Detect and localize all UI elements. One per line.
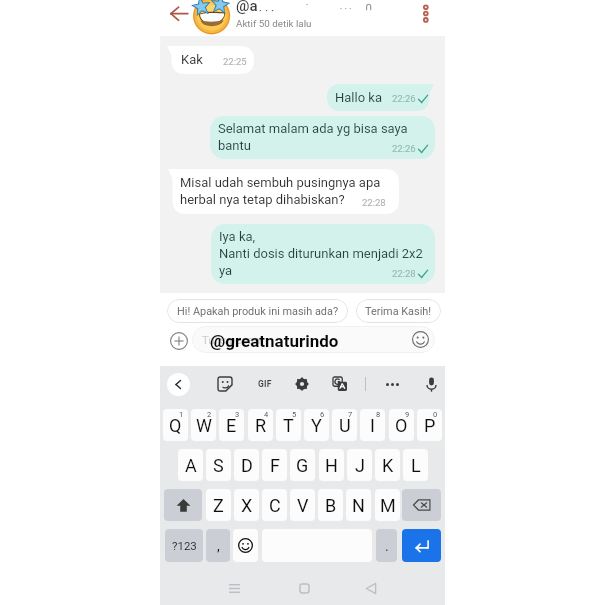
staticText: Q bbox=[169, 415, 182, 436]
button[interactable]: Y bbox=[304, 409, 329, 441]
button[interactable]: translate bbox=[330, 374, 350, 394]
button[interactable]: R bbox=[248, 409, 273, 441]
button[interactable]: G bbox=[290, 449, 315, 481]
button[interactable]: mic bbox=[421, 374, 441, 394]
button[interactable]: W bbox=[191, 409, 216, 441]
staticText: Z bbox=[213, 495, 224, 516]
staticText: 9 bbox=[405, 410, 410, 419]
staticText: R bbox=[255, 415, 267, 436]
button[interactable]: Recent apps bbox=[224, 578, 245, 599]
staticText: Kak bbox=[181, 52, 203, 67]
button[interactable]: enter bbox=[402, 529, 441, 562]
staticText: , bbox=[217, 538, 220, 554]
button[interactable]: More options bbox=[414, 0, 438, 24]
staticText: I bbox=[370, 415, 375, 436]
button[interactable]: I bbox=[360, 409, 385, 441]
button[interactable]: S bbox=[206, 449, 231, 481]
staticText: Iya ka, bbox=[219, 229, 256, 244]
staticText: @greatnaturindo bbox=[210, 331, 339, 351]
button[interactable]: Back bbox=[164, 0, 190, 26]
staticText: ?123 bbox=[172, 539, 197, 552]
button[interactable]: Selamat malam ada yg bisa saya bbox=[210, 116, 435, 159]
button[interactable]: T bbox=[276, 409, 301, 441]
button[interactable]: Iya ka, bbox=[211, 224, 435, 284]
button[interactable]: B bbox=[318, 489, 343, 521]
button[interactable]: Terima Kasih! bbox=[356, 299, 441, 323]
staticText: 7 bbox=[348, 410, 353, 419]
button[interactable]: H bbox=[319, 449, 344, 481]
staticText: ∩ bbox=[365, 0, 374, 13]
button[interactable]: Z bbox=[206, 489, 231, 521]
button[interactable]: Emoji bbox=[412, 331, 429, 348]
staticText: A bbox=[185, 455, 197, 476]
staticText: 22:28 bbox=[362, 197, 386, 208]
button[interactable]: , bbox=[206, 529, 230, 562]
staticText: · · · bbox=[340, 5, 352, 13]
button[interactable]: C bbox=[262, 489, 287, 521]
staticText: . bbox=[385, 538, 389, 554]
staticText: · bbox=[306, 1, 309, 9]
button[interactable]: dots bbox=[382, 374, 402, 394]
button[interactable]: gif bbox=[255, 374, 275, 394]
staticText: 8 bbox=[376, 410, 381, 419]
button[interactable]: J bbox=[347, 449, 372, 481]
button[interactable]: V bbox=[290, 489, 315, 521]
staticText: O bbox=[395, 415, 408, 436]
staticText: N bbox=[352, 495, 365, 516]
button[interactable]: A bbox=[178, 449, 203, 481]
staticText: 6 bbox=[320, 410, 325, 419]
button[interactable]: Hallo ka bbox=[327, 84, 434, 111]
staticText: ya bbox=[219, 263, 233, 278]
staticText: K bbox=[382, 455, 394, 476]
button[interactable]: . bbox=[376, 529, 397, 562]
staticText: M bbox=[380, 495, 396, 516]
staticText: 1 bbox=[179, 410, 184, 419]
staticText: X bbox=[241, 495, 253, 516]
staticText: V bbox=[297, 495, 309, 516]
button[interactable]: O bbox=[389, 409, 414, 441]
button[interactable]: U bbox=[332, 409, 357, 441]
button[interactable]: F bbox=[262, 449, 287, 481]
staticText: bantu bbox=[218, 138, 251, 153]
button[interactable]: backspace bbox=[402, 489, 441, 521]
button[interactable]: L bbox=[403, 449, 428, 481]
button[interactable]: Kak bbox=[167, 46, 254, 74]
staticText: Misal udah sembuh pusingnya apa bbox=[180, 175, 381, 190]
button[interactable]: sticker bbox=[215, 374, 235, 394]
button[interactable]: Home bbox=[294, 578, 315, 599]
button[interactable]: Back bbox=[360, 578, 381, 599]
staticText: T bbox=[283, 415, 294, 436]
button[interactable]: gear bbox=[292, 374, 312, 394]
staticText: G bbox=[296, 455, 309, 476]
staticText: C bbox=[269, 495, 281, 516]
button[interactable]: shift bbox=[164, 489, 202, 521]
button[interactable]: K bbox=[375, 449, 400, 481]
staticText: Aktif 50 detik lalu bbox=[236, 18, 312, 29]
button[interactable]: P bbox=[417, 409, 442, 441]
button[interactable]: X bbox=[234, 489, 259, 521]
staticText: D bbox=[241, 455, 253, 476]
button[interactable]: ?123 bbox=[165, 529, 203, 562]
button[interactable]: Q bbox=[163, 409, 188, 441]
staticText: Y bbox=[311, 415, 322, 436]
staticText: 3 bbox=[235, 410, 240, 419]
button[interactable]: Emoji bbox=[233, 529, 258, 562]
staticText: Tulis pesan bbox=[202, 333, 261, 346]
staticText: E bbox=[226, 415, 237, 436]
button[interactable]: E bbox=[219, 409, 244, 441]
button[interactable]: D bbox=[234, 449, 259, 481]
staticText: Selamat malam ada yg bisa saya bbox=[218, 121, 408, 136]
button[interactable]: Hi! Apakah produk ini masih ada? bbox=[167, 299, 348, 323]
button[interactable]: Collapse keyboard bbox=[167, 373, 190, 396]
staticText: @a bbox=[236, 0, 258, 15]
button[interactable]: M bbox=[375, 489, 400, 521]
other: Emoji bbox=[238, 538, 253, 553]
button[interactable]: Misal udah sembuh pusingnya apa bbox=[168, 169, 399, 214]
button[interactable]: Tulis pesan bbox=[192, 326, 435, 353]
button[interactable]: N bbox=[346, 489, 371, 521]
staticText: L bbox=[411, 455, 421, 476]
staticText: · · · bbox=[259, 6, 275, 17]
button[interactable]: Attach bbox=[170, 332, 188, 350]
staticText: J bbox=[355, 455, 365, 476]
